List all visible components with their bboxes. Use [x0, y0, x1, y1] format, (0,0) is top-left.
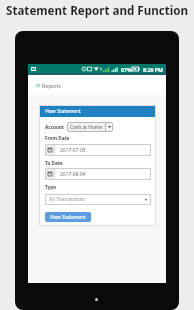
staticText: Type — [45, 184, 57, 190]
staticText: 67% — [121, 66, 132, 73]
staticText: Account — [45, 124, 65, 130]
staticText: Statement Report and Function — [6, 3, 188, 19]
staticText: View Statement — [45, 108, 81, 115]
staticText: 8:26 PM — [143, 66, 163, 73]
staticText: Reports — [42, 82, 61, 89]
staticText: To Date — [45, 160, 63, 166]
staticText: View Statement — [50, 214, 86, 221]
button[interactable]: Reports — [28, 75, 166, 95]
button[interactable]: Cash at Home — [67, 122, 113, 132]
button[interactable]: View Statement — [45, 212, 91, 222]
button[interactable]: 2017-07-05 — [45, 144, 151, 156]
button[interactable]: 2017-08-04 — [45, 168, 151, 180]
staticText: Cash at Home — [70, 124, 103, 131]
staticText: From Date — [45, 135, 70, 141]
staticText: 2017-07-05 — [60, 147, 86, 154]
staticText: 2017-08-04 — [60, 171, 86, 178]
button[interactable]: All Transactions — [45, 194, 151, 205]
staticText: All Transactions — [49, 196, 85, 203]
